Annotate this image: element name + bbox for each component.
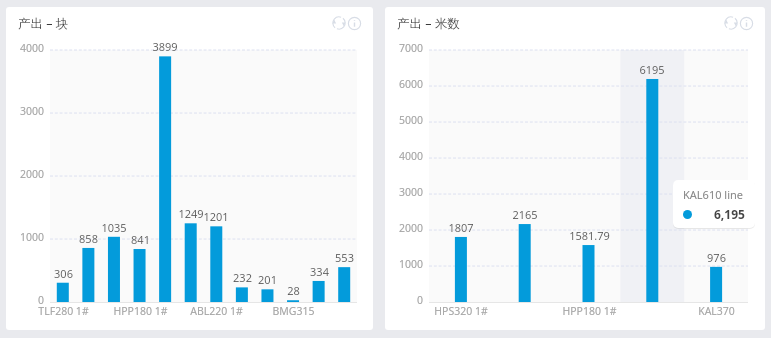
staticText: 1581.79 (569, 228, 610, 242)
staticText: 28 (287, 283, 300, 297)
staticText: HPS320 1# (434, 304, 488, 318)
staticText: 2165 (512, 207, 538, 221)
staticText: 2000 (19, 167, 44, 181)
staticText: 553 (335, 250, 354, 264)
staticText: 1807 (448, 220, 474, 234)
staticText: KAL370 (698, 304, 735, 318)
staticText: 3899 (152, 39, 178, 53)
staticText: TLF280 1# (38, 304, 89, 318)
staticText: 0 (416, 293, 423, 307)
staticText: 0 (37, 293, 44, 307)
staticText: 3000 (19, 104, 44, 118)
staticText: 306 (54, 266, 73, 280)
staticText: 841 (131, 232, 150, 246)
staticText: 产出 – 块 (18, 15, 69, 32)
staticText: 6,195 (714, 206, 745, 222)
staticText: HPP180 1# (562, 304, 617, 318)
staticText: KAL610 line (683, 187, 744, 202)
staticText: 1000 (398, 257, 423, 271)
staticText: 976 (707, 250, 726, 264)
staticText: 4000 (398, 149, 423, 163)
button[interactable]: Refresh (721, 14, 738, 32)
staticText: 1249 (178, 206, 204, 220)
staticText: 858 (79, 231, 98, 245)
staticText: 6195 (639, 62, 665, 76)
staticText: 201 (258, 272, 277, 286)
staticText: 334 (310, 264, 329, 278)
staticText: 1000 (19, 230, 44, 244)
staticText: 2000 (398, 221, 423, 235)
staticText: 5000 (398, 113, 423, 127)
staticText: 4000 (19, 41, 44, 55)
staticText: BMG315 (272, 304, 315, 318)
staticText: 1201 (203, 209, 229, 223)
button[interactable]: Info (738, 14, 755, 32)
staticText: ABL220 1# (190, 304, 243, 318)
staticText: 7000 (398, 41, 423, 55)
button[interactable]: Info (346, 14, 363, 32)
staticText: 232 (233, 270, 252, 284)
staticText: 3000 (398, 185, 423, 199)
staticText: 产出 – 米数 (397, 15, 460, 32)
button[interactable]: Refresh (329, 14, 346, 32)
staticText: 1035 (101, 220, 127, 234)
staticText: HPP180 1# (113, 304, 168, 318)
staticText: 6000 (398, 77, 423, 91)
